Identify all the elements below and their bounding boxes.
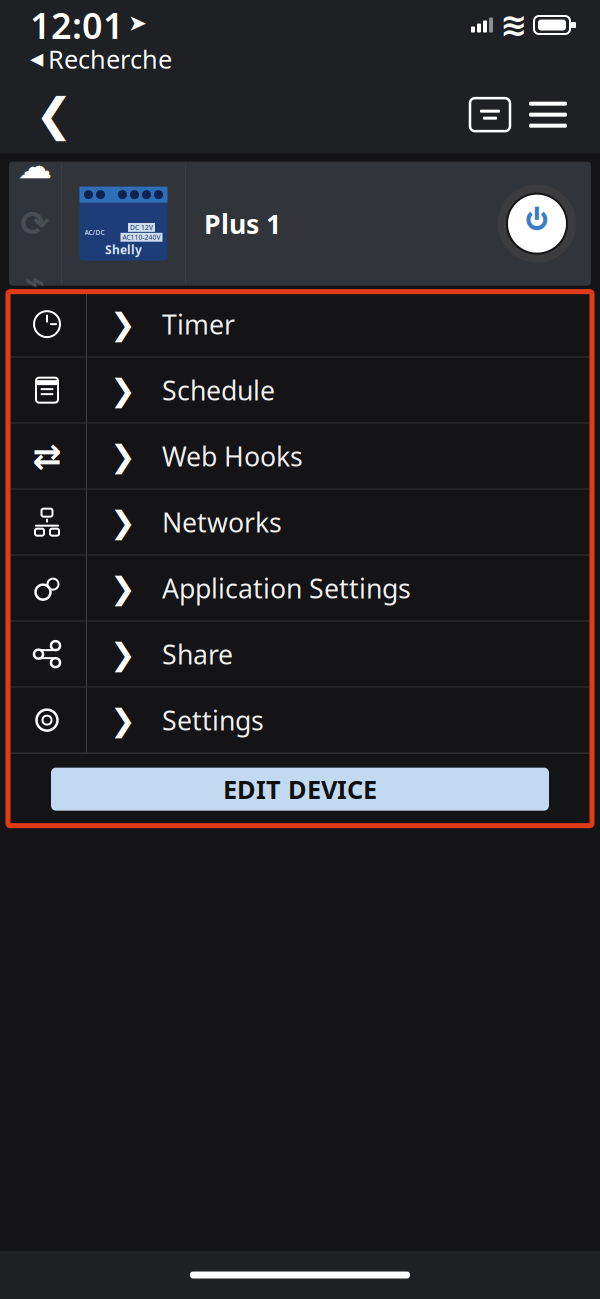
staticText: Timer: [162, 306, 235, 342]
button[interactable]: Menu: [518, 87, 578, 143]
staticText: AC110-240V: [122, 233, 160, 242]
staticText: ⇄: [32, 436, 61, 476]
button[interactable]: ❯: [8, 292, 592, 357]
staticText: ❯: [110, 637, 136, 671]
staticText: ❯: [110, 505, 136, 539]
staticText: ⟳: [20, 204, 49, 243]
staticText: Networks: [162, 504, 282, 540]
staticText: ❯: [110, 373, 136, 407]
staticText: ❯: [110, 703, 136, 737]
staticText: 12:01: [30, 1, 124, 49]
staticText: ❮: [35, 89, 73, 140]
button[interactable]: ❯: [8, 556, 592, 621]
staticText: ❯: [110, 307, 136, 341]
staticText: ⌁: [24, 261, 45, 301]
staticText: ☁: [17, 147, 52, 186]
staticText: AC/DC: [84, 228, 104, 237]
button[interactable]: EDIT DEVICE: [51, 768, 549, 811]
staticText: Share: [162, 636, 233, 672]
staticText: ❯: [110, 439, 136, 473]
staticText: Recherche: [48, 42, 172, 76]
staticText: ⏻: [525, 201, 548, 247]
staticText: ◀: [30, 49, 43, 69]
button[interactable]: Back: [22, 83, 86, 147]
button[interactable]: ❯: [8, 490, 592, 555]
staticText: ≋: [500, 7, 527, 43]
staticText: DC 12V: [130, 223, 153, 232]
button[interactable]: ❯: [8, 358, 592, 423]
staticText: Plus 1: [204, 206, 281, 241]
staticText: EDIT DEVICE: [223, 772, 377, 806]
button[interactable]: ⇄: [8, 424, 592, 489]
button[interactable]: Power toggle: [489, 176, 585, 272]
staticText: ❯: [110, 571, 136, 605]
staticText: ➤: [128, 10, 147, 36]
staticText: Application Settings: [162, 570, 411, 606]
button[interactable]: ❯: [8, 688, 592, 753]
staticText: Settings: [162, 702, 264, 738]
staticText: Web Hooks: [162, 438, 303, 474]
staticText: Shelly: [105, 242, 142, 258]
button[interactable]: ❯: [8, 622, 592, 687]
button[interactable]: Messages: [462, 87, 518, 143]
staticText: Schedule: [162, 372, 275, 408]
